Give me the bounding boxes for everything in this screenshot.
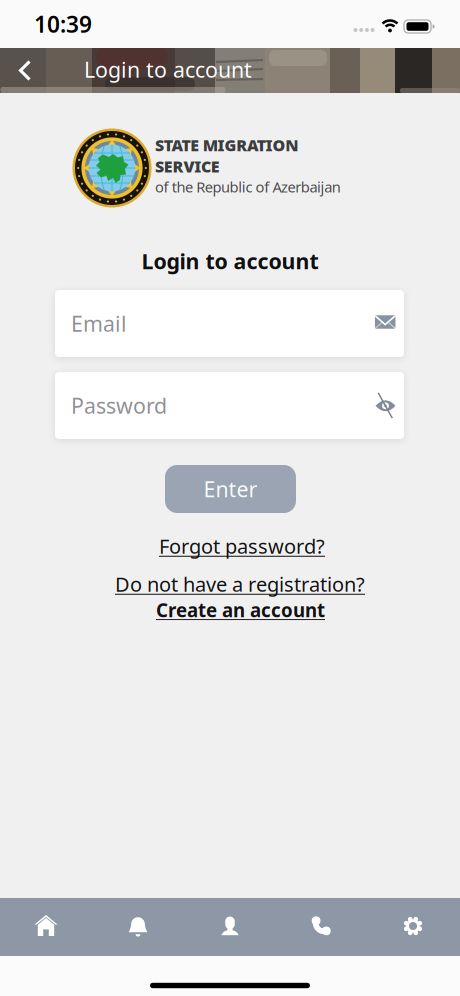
button[interactable]: Do not have a registration?: [115, 571, 365, 597]
staticText: Login to account: [84, 55, 252, 84]
staticText: Enter: [203, 475, 257, 503]
button[interactable]: Notifications: [116, 904, 160, 948]
staticText: Do not have a registration?: [115, 571, 365, 597]
button[interactable]: Enter: [165, 465, 296, 513]
staticText: 10:39: [34, 9, 92, 39]
staticText: SERVICE: [155, 156, 220, 177]
button[interactable]: Create an account: [156, 598, 325, 622]
staticText: Password: [71, 391, 167, 420]
staticText: Login to account: [141, 247, 318, 275]
staticText: STATE MIGRATION: [155, 134, 298, 156]
staticText: Create an account: [156, 598, 325, 622]
staticText: of the Republic of Azerbaijan: [155, 177, 341, 196]
staticText: Email: [71, 309, 127, 338]
staticText: Forgot password?: [159, 533, 325, 559]
button[interactable]: Settings: [391, 904, 435, 948]
button[interactable]: Forgot password?: [159, 533, 325, 559]
button[interactable]: Back: [3, 48, 47, 93]
button[interactable]: Home: [24, 904, 68, 948]
button[interactable]: Profile: [208, 904, 252, 948]
button[interactable]: Show password: [363, 383, 407, 427]
button[interactable]: Contact: [299, 904, 343, 948]
